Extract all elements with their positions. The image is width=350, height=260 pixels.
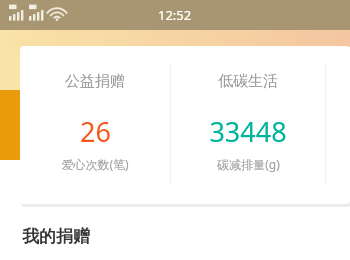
button[interactable]: 公益捐赠 xyxy=(20,46,170,204)
staticText: 低碳生活 xyxy=(218,72,278,91)
staticText: 33448 xyxy=(209,113,287,150)
staticText: 26 xyxy=(80,113,111,150)
other: Signal and Wi-Fi status xyxy=(7,5,79,25)
staticText: 12:52 xyxy=(158,6,192,24)
button[interactable]: 公益捐赠 xyxy=(20,46,350,204)
staticText: 爱心次数(笔) xyxy=(61,156,129,172)
staticText: 碳减排量(g) xyxy=(217,156,280,172)
staticText: 公益捐赠 xyxy=(65,72,125,91)
button[interactable]: 低碳生活 xyxy=(171,46,325,204)
staticText: 我的捐赠 xyxy=(22,226,90,247)
